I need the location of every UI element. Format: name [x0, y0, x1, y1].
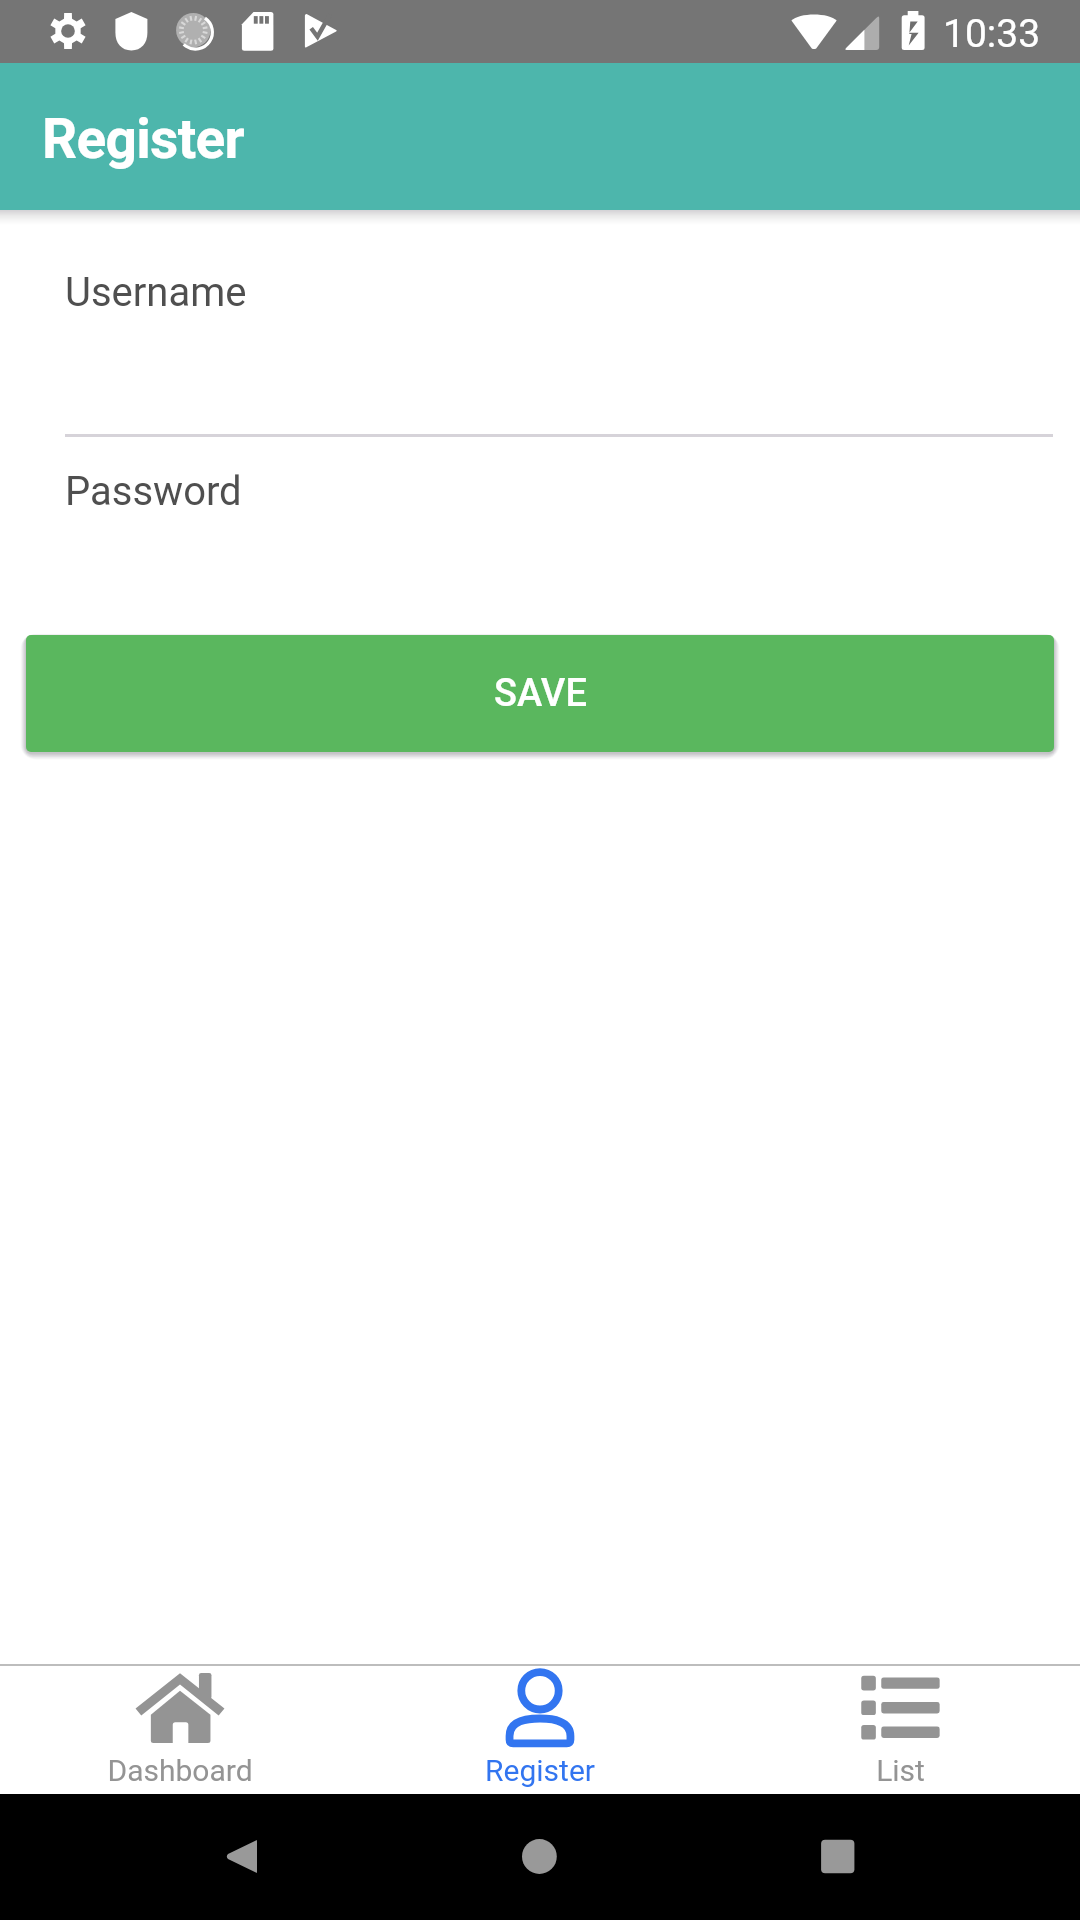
button[interactable]: List [720, 1666, 1080, 1794]
staticText: 10:33 [943, 11, 1041, 57]
other: List [850, 1666, 950, 1750]
staticText: Password [65, 468, 242, 515]
staticText: Username [65, 269, 247, 316]
button[interactable]: Register [360, 1666, 720, 1794]
other: Register [490, 1666, 590, 1750]
button[interactable]: Dashboard [0, 1666, 360, 1794]
button[interactable]: SAVE [26, 635, 1054, 752]
staticText: SAVE [494, 671, 587, 716]
staticText: Dashboard [107, 1753, 253, 1788]
staticText: List [876, 1753, 925, 1788]
staticText: Register [485, 1753, 595, 1788]
staticText: Register [42, 107, 244, 171]
other: Dashboard [130, 1666, 230, 1750]
